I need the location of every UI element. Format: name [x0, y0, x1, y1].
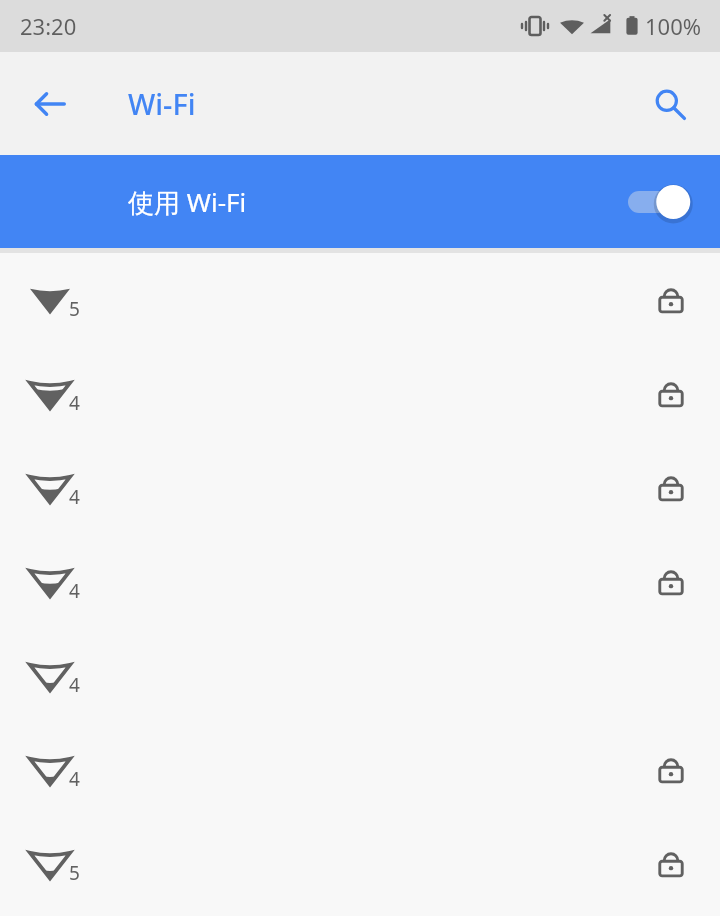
- button[interactable]: Wi-Fi network, signal 1 of 4: [0, 723, 720, 817]
- staticText: 4: [69, 766, 80, 792]
- button[interactable]: Wi-Fi network, signal 3 of 4: [0, 347, 720, 441]
- button[interactable]: Wi-Fi network, signal 4 of 4: [0, 253, 720, 347]
- button[interactable]: Back: [14, 68, 86, 140]
- staticText: 23:20: [20, 11, 77, 41]
- staticText: 4: [69, 484, 80, 510]
- staticText: 4: [69, 390, 80, 416]
- button[interactable]: Wi-Fi network, signal 2 of 4: [0, 441, 720, 535]
- other: Mobile signal: [589, 14, 615, 38]
- button[interactable]: Wi-Fi network, signal 2 of 4: [0, 535, 720, 629]
- staticText: Wi-Fi: [128, 84, 196, 123]
- button[interactable]: Wi-Fi network, signal 1 of 4: [0, 629, 720, 723]
- staticText: 100%: [645, 11, 702, 41]
- staticText: 5: [69, 860, 80, 886]
- staticText: 5: [69, 296, 80, 322]
- staticText: 4: [69, 578, 80, 604]
- staticText: 4: [579, 22, 586, 37]
- button[interactable]: Wi-Fi network, signal 1 of 4: [0, 817, 720, 911]
- other: Wi-Fi signal: [559, 14, 585, 38]
- other: Vibrate: [523, 14, 547, 38]
- staticText: 4: [69, 672, 80, 698]
- other: Battery: [625, 14, 639, 38]
- button[interactable]: 使用 Wi-Fi: [0, 155, 720, 248]
- button[interactable]: Search: [634, 68, 706, 140]
- staticText: 使用 Wi-Fi: [128, 184, 247, 220]
